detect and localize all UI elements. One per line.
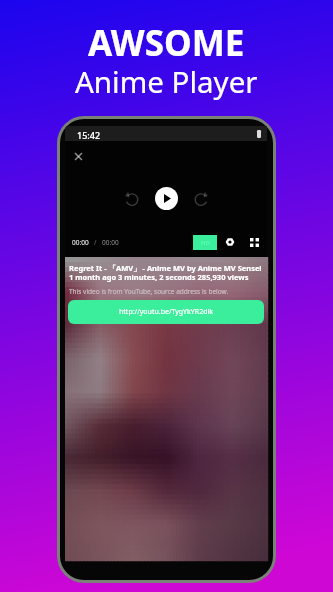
button[interactable]: Settings xyxy=(225,237,235,247)
staticText: http://youtu.be/TygYkYR2dik xyxy=(119,307,213,317)
button[interactable]: Close xyxy=(75,153,82,160)
staticText: HD xyxy=(201,239,210,247)
staticText: Anime Player xyxy=(75,61,258,101)
staticText: AWSOME xyxy=(88,19,245,67)
staticText: Regret It - 「AMV」 - Anime MV by Anime MV… xyxy=(69,263,263,282)
button[interactable]: HD xyxy=(193,235,217,250)
staticText: 00:00 xyxy=(102,238,119,247)
button[interactable]: Play xyxy=(155,187,178,210)
staticText: This video is from YouTube, source addre… xyxy=(69,287,229,296)
staticText: 15:42 xyxy=(77,129,101,141)
button[interactable]: Forward 10 seconds xyxy=(193,191,209,207)
button[interactable]: Fullscreen xyxy=(250,238,259,247)
button[interactable]: Replay 10 seconds xyxy=(124,191,140,207)
staticText: 00:00 xyxy=(72,238,89,247)
staticText: / xyxy=(94,238,97,247)
button[interactable]: http://youtu.be/TygYkYR2dik xyxy=(68,300,264,324)
